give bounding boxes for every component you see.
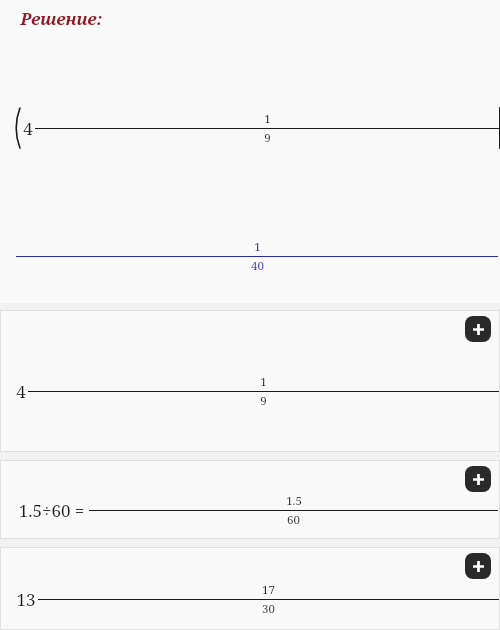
- staticText: 9: [260, 393, 267, 409]
- staticText: 1.5: [286, 493, 302, 509]
- button[interactable]: Add: [465, 316, 491, 342]
- button[interactable]: 1.5÷60 =: [0, 460, 500, 539]
- staticText: 40: [251, 258, 264, 274]
- staticText: 1: [264, 111, 271, 127]
- staticText: 4: [23, 117, 33, 140]
- staticText: 1: [254, 239, 261, 255]
- button[interactable]: Add: [465, 466, 491, 492]
- button[interactable]: Add: [465, 553, 491, 579]
- button[interactable]: 4: [0, 310, 500, 452]
- staticText: 1.5÷60 =: [16, 499, 87, 522]
- staticText: 17: [262, 582, 275, 598]
- staticText: 1: [260, 374, 267, 390]
- staticText: 30: [262, 601, 275, 617]
- staticText: 9: [264, 130, 271, 146]
- staticText: Решение:: [20, 7, 103, 30]
- button[interactable]: 13: [0, 547, 500, 630]
- staticText: 13: [16, 588, 36, 611]
- staticText: 4: [16, 380, 26, 403]
- staticText: 60: [287, 512, 300, 528]
